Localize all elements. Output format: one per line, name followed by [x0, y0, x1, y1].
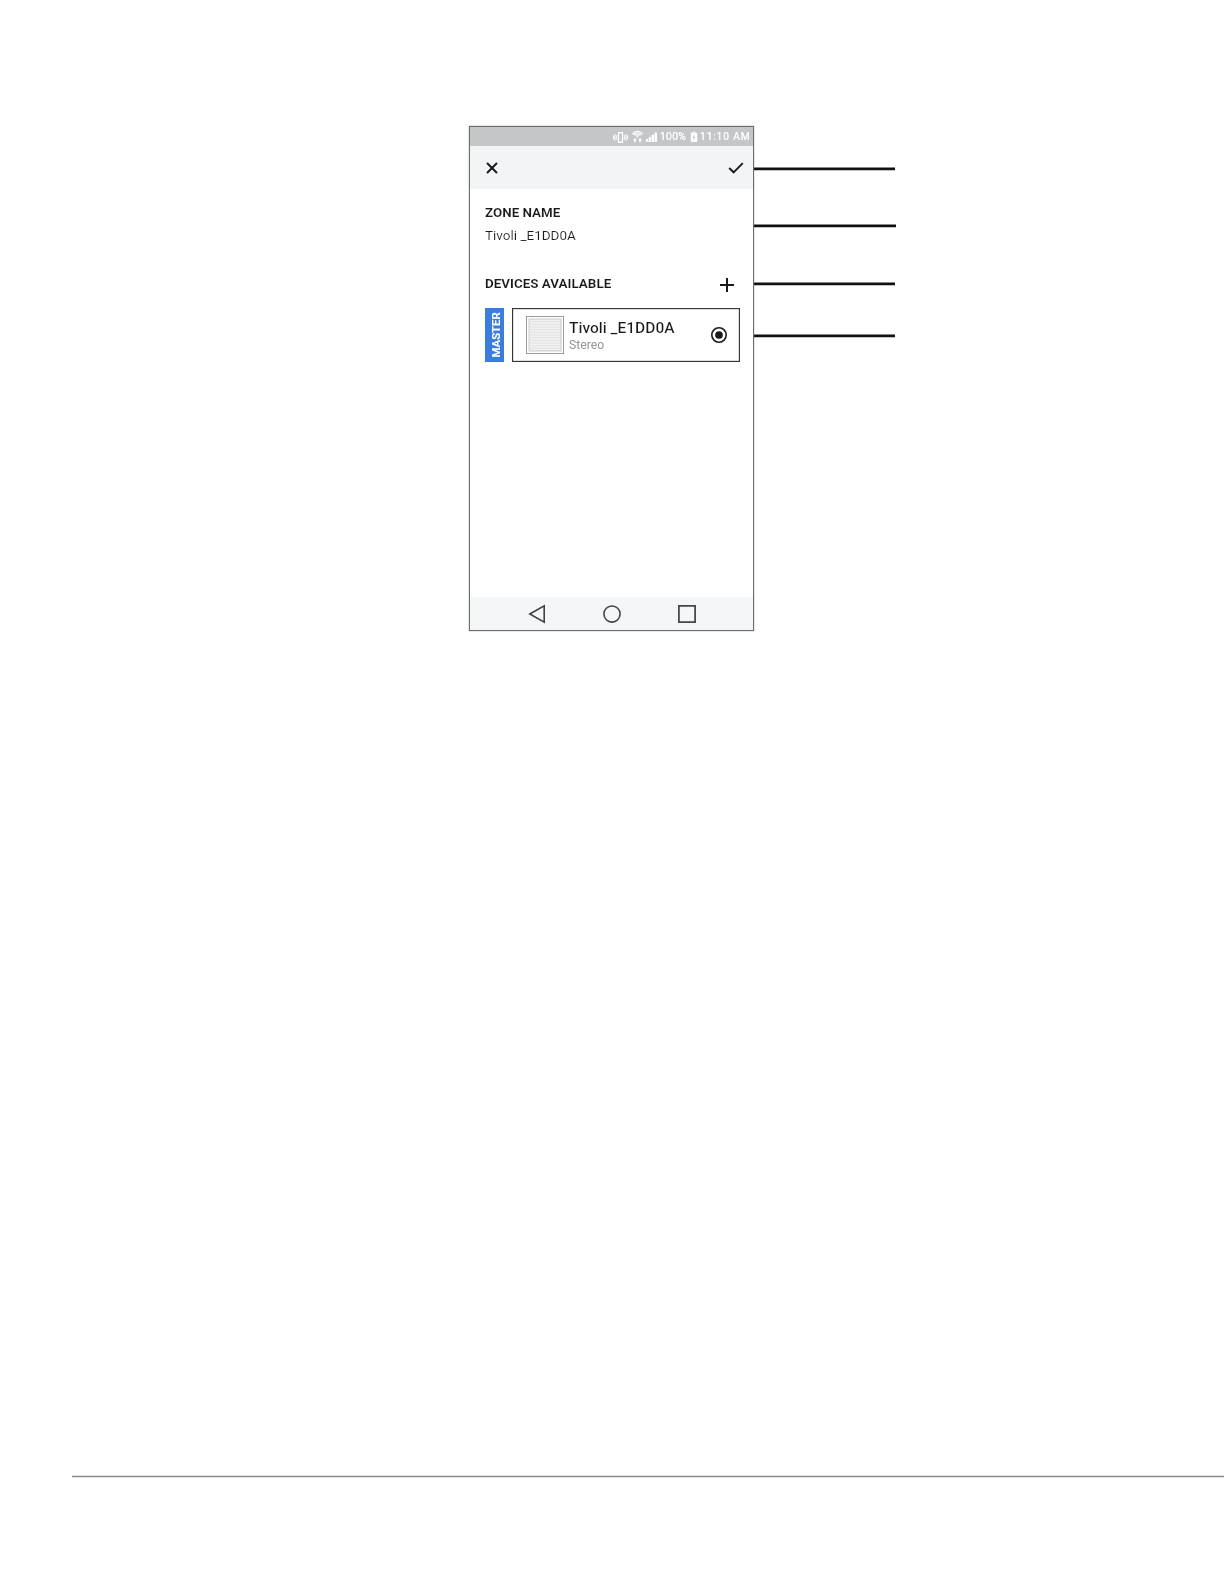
button[interactable]: Home: [592, 597, 632, 630]
staticText: ZONE NAME: [485, 205, 561, 221]
button[interactable]: Close: [479, 155, 505, 181]
staticText: MASTER: [489, 312, 502, 358]
staticText: DEVICES AVAILABLE: [485, 276, 612, 292]
button[interactable]: Back: [517, 597, 557, 630]
button[interactable]: Add device: [717, 275, 737, 295]
button[interactable]: Select device: [709, 325, 729, 345]
button[interactable]: MASTER: [485, 308, 504, 362]
button[interactable]: Tivoli _E1DD0A: [512, 308, 740, 362]
staticText: 11:10 AM: [700, 131, 751, 143]
button[interactable]: Recent apps: [667, 597, 707, 630]
button[interactable]: Confirm: [723, 155, 749, 181]
staticText: Tivoli _E1DD0A: [485, 227, 576, 243]
staticText: Stereo: [569, 338, 605, 352]
staticText: 100%: [660, 131, 687, 143]
staticText: Tivoli _E1DD0A: [569, 319, 675, 337]
